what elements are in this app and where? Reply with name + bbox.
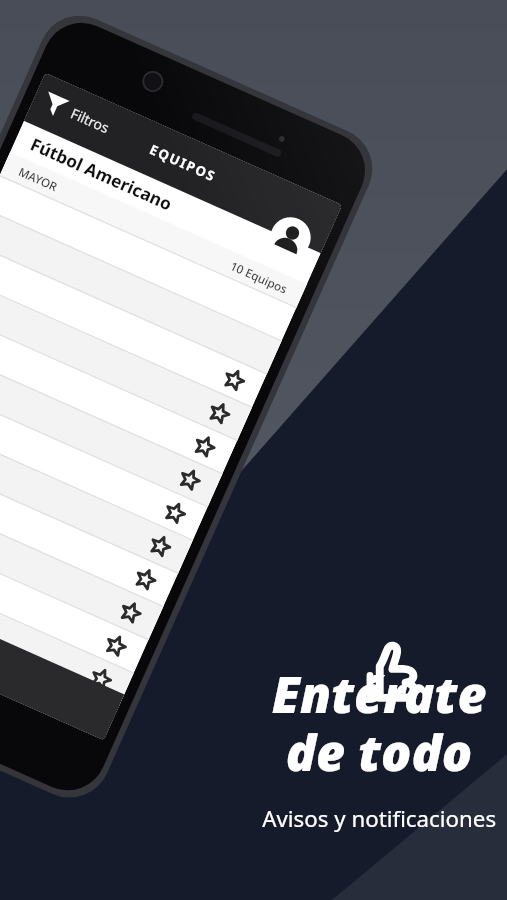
button[interactable]: Entérate de todo, avisos y notificacione… [0,0,507,900]
